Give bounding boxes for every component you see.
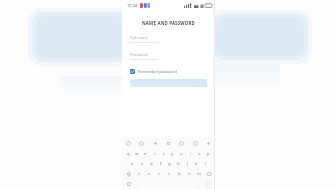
button[interactable]: r <box>150 149 159 159</box>
staticText: b <box>178 171 181 177</box>
button[interactable]: d <box>147 159 156 169</box>
button[interactable]: h <box>174 159 183 169</box>
button[interactable]: k <box>192 159 201 169</box>
staticText: e <box>144 151 147 157</box>
button[interactable]: b <box>174 169 184 179</box>
staticText: g <box>168 161 171 167</box>
button[interactable]: shift <box>124 169 133 179</box>
button[interactable]: , <box>134 179 142 189</box>
staticText: t <box>163 151 165 157</box>
button[interactable]: w <box>132 149 141 159</box>
button[interactable]: backspace <box>204 169 213 179</box>
staticText: , <box>137 181 139 187</box>
button[interactable]: j <box>183 159 192 169</box>
button[interactable]: x <box>144 169 154 179</box>
button[interactable]: enter <box>203 179 213 189</box>
button[interactable]: Keyboard tool 1 <box>139 141 144 146</box>
staticText: s <box>141 161 144 167</box>
staticText: p <box>207 151 210 157</box>
staticText: x <box>148 171 151 177</box>
button[interactable]: Keyboard tool 5 <box>193 141 198 146</box>
button[interactable]: u <box>177 149 186 159</box>
staticText: w <box>135 151 139 157</box>
staticText: k <box>195 161 198 167</box>
staticText: 17:32 <box>127 3 138 8</box>
staticText: f <box>160 161 162 167</box>
button[interactable]: Keyboard tool 3 <box>166 141 171 146</box>
button[interactable]: v <box>164 169 174 179</box>
staticText: d <box>150 161 153 167</box>
staticText: c <box>158 171 161 177</box>
staticText: z <box>138 171 140 177</box>
button[interactable]: n <box>184 169 194 179</box>
staticText: y <box>171 151 174 157</box>
button[interactable]: i <box>186 149 195 159</box>
button[interactable]: g <box>165 159 174 169</box>
button[interactable]: . <box>195 179 203 189</box>
button[interactable]: Keyboard tool 0 <box>126 141 131 146</box>
staticText: u <box>180 151 183 157</box>
button[interactable]: o <box>195 149 204 159</box>
button[interactable]: q <box>124 149 132 159</box>
button[interactable]: f <box>156 159 165 169</box>
button[interactable]: Keyboard tool 2 <box>153 141 158 146</box>
staticText: Full name <box>130 35 148 40</box>
staticText: m <box>197 171 201 177</box>
staticText: i <box>190 151 192 157</box>
button[interactable]: Remember password <box>130 69 207 74</box>
staticText: Remember password <box>138 69 177 74</box>
button[interactable]: symbols <box>124 179 134 189</box>
button[interactable]: t <box>159 149 168 159</box>
button[interactable]: y <box>168 149 177 159</box>
staticText: v <box>168 171 171 177</box>
staticText: n <box>188 171 191 177</box>
staticText: l <box>205 161 207 167</box>
button[interactable]: e <box>141 149 150 159</box>
button[interactable]: m <box>194 169 204 179</box>
staticText: q <box>127 151 130 157</box>
staticText: a <box>131 161 134 167</box>
button[interactable]: Keyboard tool 4 <box>179 141 184 146</box>
staticText: NAME AND PASSWORD <box>130 20 207 26</box>
staticText: r <box>154 151 156 157</box>
staticText: . <box>198 181 200 187</box>
button[interactable]: c <box>154 169 164 179</box>
staticText: h <box>177 161 180 167</box>
button[interactable]: p <box>204 149 213 159</box>
staticText: j <box>187 161 189 167</box>
button[interactable]: z <box>133 169 144 179</box>
button[interactable]: Keyboard tool 6 <box>206 141 211 146</box>
staticText: Password <box>130 52 148 57</box>
button[interactable]: s <box>137 159 147 169</box>
button[interactable]: l <box>201 159 210 169</box>
staticText: o <box>198 151 201 157</box>
button[interactable]: a <box>127 159 137 169</box>
